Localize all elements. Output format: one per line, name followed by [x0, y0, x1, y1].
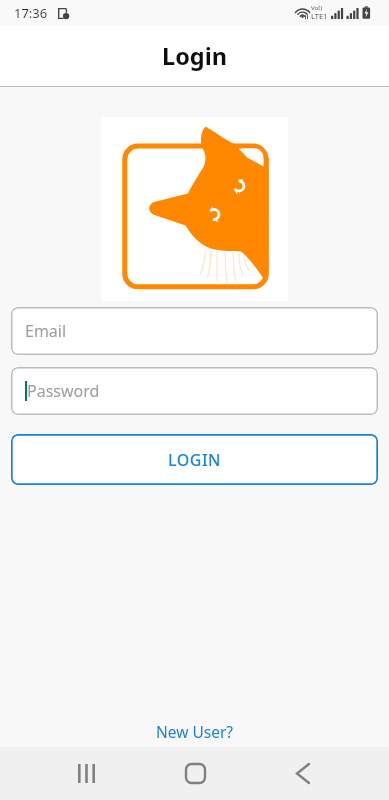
staticText: Email — [25, 320, 67, 342]
button[interactable]: Home — [141, 747, 249, 800]
staticText: Login — [162, 40, 227, 72]
button[interactable]: Password — [11, 367, 378, 415]
button[interactable]: LOGIN — [11, 434, 378, 485]
button[interactable]: Back — [249, 747, 357, 800]
staticText: 17:36 — [14, 4, 48, 22]
staticText: LTE1 — [311, 11, 328, 21]
staticText: New User? — [156, 721, 234, 742]
button[interactable]: Recents — [32, 747, 141, 800]
button[interactable]: Email — [11, 307, 378, 355]
staticText: VoI) — [311, 4, 322, 12]
staticText: Password — [27, 380, 100, 402]
staticText: LOGIN — [168, 449, 221, 471]
button[interactable]: New User? — [146, 716, 244, 747]
